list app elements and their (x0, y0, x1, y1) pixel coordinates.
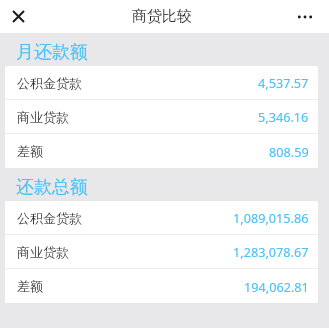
button[interactable]: Close (7, 5, 30, 28)
staticText: 1,089,015.86 (233, 209, 309, 226)
staticText: 5,346.16 (258, 108, 309, 125)
staticText: 4,537.57 (258, 74, 309, 91)
button[interactable]: 差额 (5, 134, 318, 168)
staticText: 194,062.81 (244, 278, 309, 295)
staticText: 商贷比较 (132, 7, 192, 26)
button[interactable]: 差额 (5, 269, 318, 303)
staticText: 商业贷款 (17, 109, 69, 125)
staticText: 差额 (17, 278, 43, 294)
staticText: 公积金贷款 (17, 75, 82, 91)
staticText: 月还款额 (16, 41, 88, 64)
button[interactable]: 商业贷款 (5, 100, 318, 133)
staticText: 808.59 (269, 143, 309, 160)
staticText: 商业贷款 (17, 244, 69, 260)
staticText: 还款总额 (16, 176, 88, 199)
staticText: 差额 (17, 143, 43, 159)
button[interactable]: 公积金贷款 (5, 201, 318, 234)
button[interactable]: More options (293, 5, 316, 28)
staticText: 公积金贷款 (17, 210, 82, 226)
button[interactable]: 商业贷款 (5, 235, 318, 268)
staticText: 1,283,078.67 (233, 243, 309, 260)
button[interactable]: 公积金贷款 (5, 66, 318, 99)
